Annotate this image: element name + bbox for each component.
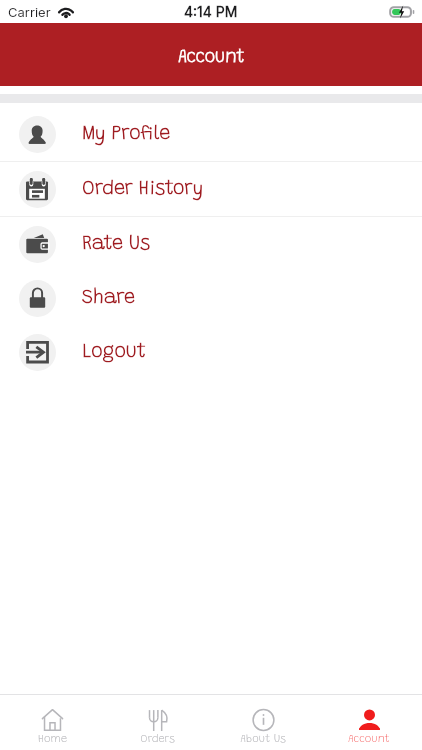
staticText: Orders <box>140 734 175 745</box>
staticText: Carrier <box>8 4 51 20</box>
staticText: Order History <box>82 180 204 199</box>
staticText: Share <box>82 289 135 308</box>
button[interactable]: Orders <box>105 695 210 750</box>
staticText: About Us <box>240 734 286 745</box>
staticText: 4:14 PM <box>184 3 238 20</box>
button[interactable]: About Us <box>210 695 316 750</box>
button[interactable]: Rate Us <box>0 217 422 271</box>
staticText: Home <box>38 734 67 745</box>
staticText: Rate Us <box>82 235 150 254</box>
staticText: Logout <box>82 343 147 362</box>
staticText: Account <box>178 49 245 66</box>
button[interactable]: Logout <box>0 325 422 379</box>
button[interactable]: Home <box>0 695 105 750</box>
staticText: Account <box>348 734 390 745</box>
button[interactable]: Order History <box>0 162 422 216</box>
staticText: My Profile <box>82 125 171 144</box>
button[interactable]: Share <box>0 271 422 325</box>
button[interactable]: My Profile <box>0 107 422 161</box>
button[interactable]: Account <box>316 695 422 750</box>
